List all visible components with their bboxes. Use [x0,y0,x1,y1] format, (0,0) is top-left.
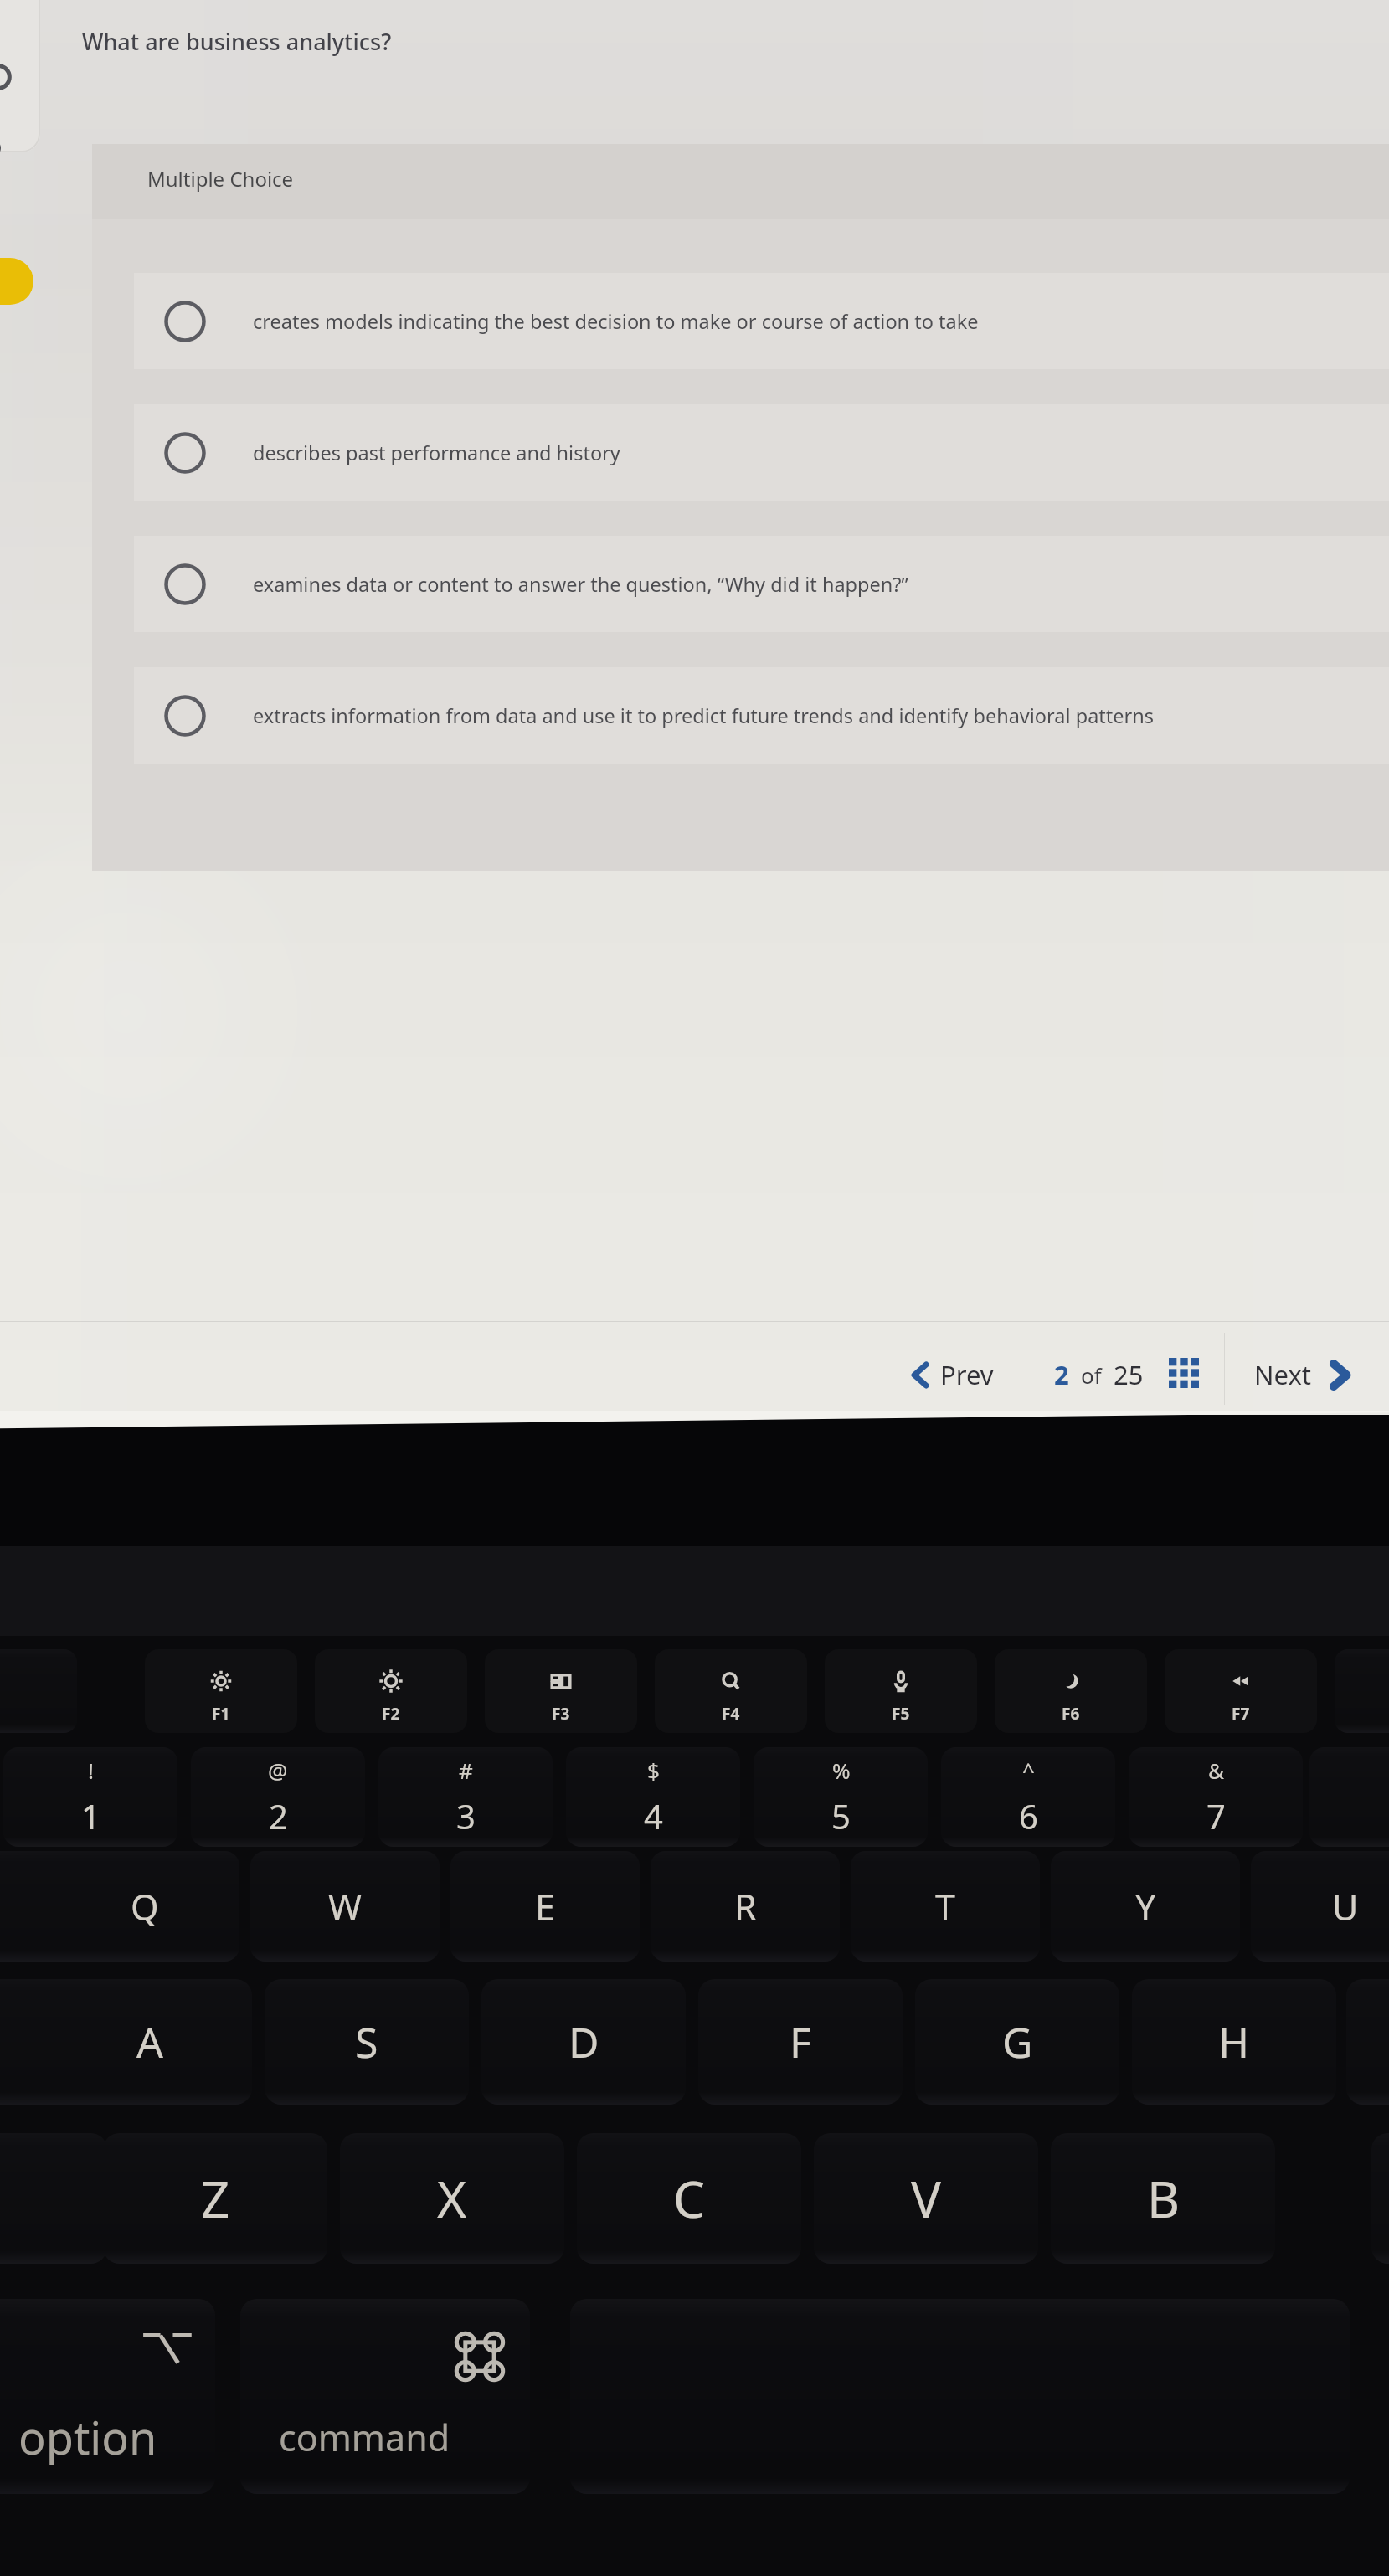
button[interactable]: 3 [378,1747,553,1847]
staticText: X [437,2164,467,2233]
button[interactable]: F1 [145,1649,297,1733]
staticText: & [1208,1756,1225,1785]
staticText: S [355,2013,378,2070]
button[interactable]: Next [1254,1357,1348,1392]
button[interactable]: S [265,1979,469,2105]
button[interactable]: 5 [754,1747,928,1847]
staticText: 7 [1206,1793,1226,1838]
button[interactable]: examines data or content to answer the q… [134,536,1389,632]
staticText: V [911,2164,941,2233]
staticText: B [1147,2164,1180,2233]
button[interactable]: B [1051,2133,1275,2264]
button[interactable]: 6 [941,1747,1115,1847]
button[interactable]: F2 [315,1649,467,1733]
staticText: U [1332,1882,1359,1931]
button[interactable]: describes past performance and history [134,404,1389,501]
staticText: C [673,2164,705,2233]
staticText: T [935,1882,955,1931]
button[interactable]: F6 [995,1649,1147,1733]
button[interactable]: Prev [913,1357,994,1392]
button[interactable]: X [340,2133,564,2264]
staticText: 4 [644,1793,663,1838]
button[interactable]: D [481,1979,686,2105]
button[interactable]: 4 [566,1747,740,1847]
staticText: R [734,1882,757,1931]
staticText: F5 [892,1703,910,1725]
staticText: Next [1254,1357,1312,1392]
button[interactable]: 1 [3,1747,177,1847]
staticText: F [790,2013,811,2070]
button[interactable]: F7 [1165,1649,1317,1733]
staticText: 2 [269,1793,288,1838]
staticText: F7 [1232,1703,1250,1725]
button[interactable]: Z [103,2133,327,2264]
button[interactable]: H [1132,1979,1336,2105]
staticText: Multiple Choice [147,165,294,193]
button[interactable]: F3 [485,1649,637,1733]
staticText: 3 [456,1793,476,1838]
staticText: # [459,1756,473,1785]
staticText: G [1002,2013,1033,2070]
button[interactable]: A [48,1979,252,2105]
staticText: describes past performance and history [253,440,620,466]
staticText: Y [1135,1882,1156,1931]
staticText: 2 [1054,1357,1069,1392]
staticText: 5 [831,1793,851,1838]
button[interactable]: T [851,1851,1040,1962]
staticText: Z [201,2164,230,2233]
staticText: % [832,1756,851,1785]
staticText: W [328,1882,362,1931]
button[interactable]: command [240,2299,530,2494]
button[interactable]: G [915,1979,1119,2105]
button[interactable]: option [0,2299,215,2494]
button[interactable]: W [250,1851,440,1962]
staticText: A [136,2013,163,2070]
staticText: $ [647,1756,660,1785]
staticText: What are business analytics? [82,26,392,57]
staticText: ! [88,1756,94,1785]
button[interactable]: 7 [1129,1747,1303,1847]
button[interactable]: F [698,1979,903,2105]
staticText: H [1218,2013,1250,2070]
staticText: 25 [1114,1357,1144,1392]
staticText: F4 [722,1703,740,1725]
staticText: 1 [81,1793,100,1838]
staticText: option [18,2406,157,2468]
staticText: extracts information from data and use i… [253,702,1155,729]
staticText: 6 [1019,1793,1038,1838]
staticText: F2 [382,1703,400,1725]
staticText: F1 [212,1703,230,1725]
staticText: Q [131,1882,159,1931]
button[interactable]: Q [50,1851,239,1962]
button[interactable]: R [651,1851,840,1962]
button[interactable]: creates models indicating the best decis… [134,273,1389,369]
staticText: D [568,2013,599,2070]
button[interactable]: Y [1051,1851,1240,1962]
button[interactable]: F4 [655,1649,807,1733]
button[interactable]: C [577,2133,801,2264]
staticText: creates models indicating the best decis… [253,308,979,335]
button[interactable]: 2 [191,1747,365,1847]
staticText: @ [268,1756,288,1785]
button[interactable]: V [814,2133,1038,2264]
button[interactable]: Saved [0,258,33,305]
button[interactable]: U [1251,1851,1389,1962]
staticText: F6 [1062,1703,1080,1725]
button[interactable]: All questions [1169,1358,1202,1391]
staticText: of [1081,1360,1102,1390]
staticText: Prev [940,1357,994,1392]
button[interactable]: E [450,1851,640,1962]
button[interactable]: F5 [825,1649,977,1733]
button[interactable]: extracts information from data and use i… [134,667,1389,764]
staticText: examines data or content to answer the q… [253,571,908,598]
